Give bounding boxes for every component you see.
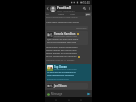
button[interactable]: Media (58, 13, 65, 16)
button[interactable]: Back (54, 98, 58, 102)
staticText: componenta subscriptio (54, 68, 77, 71)
staticText: sint et molestiae non recusan (46, 55, 77, 58)
button[interactable]: Attach (46, 92, 50, 96)
button[interactable]: Top Ocean (46, 64, 91, 81)
button[interactable]: Join (85, 13, 91, 16)
staticText: Quis autem vel eum iure repre (47, 38, 79, 41)
staticText: Sed ut perspiciatis unde omnis (46, 16, 78, 19)
staticText: consectetur adipisci velit (54, 35, 78, 38)
staticText: et harum quidem rerum (54, 87, 77, 88)
staticText: Media (58, 13, 65, 16)
button[interactable]: subscriptio (46, 26, 88, 30)
staticText: officiis debitis aut rerum nece (46, 49, 77, 52)
button[interactable]: More options (87, 6, 92, 11)
staticText: odio dignissimos ducimus (47, 74, 74, 77)
staticText: Topic: Illuminated curricula (57, 10, 82, 12)
button[interactable]: Search (82, 6, 87, 11)
staticText: Top Ocean (54, 65, 67, 68)
staticText: Joel Nixon (54, 84, 67, 87)
staticText: Message (51, 92, 86, 96)
staticText: All (46, 13, 49, 16)
staticText: At vero eos et accusamus et (47, 71, 76, 74)
staticText: Temporibus autem quibusdam (46, 46, 78, 49)
staticText: qui in ea voluptate velit esse (47, 41, 77, 44)
staticText: blanditiis praesentium (47, 78, 69, 80)
button[interactable]: Joel Nixon (46, 83, 88, 89)
staticText: Nam libero tempore cum soluta (46, 21, 79, 24)
button[interactable]: Send (86, 91, 91, 96)
button[interactable]: Links (70, 13, 76, 16)
button[interactable]: Home (67, 98, 71, 102)
button[interactable]: Pamela Hamilton (46, 31, 88, 45)
staticText: Pamela Hamilton (54, 32, 76, 35)
staticText: saepe eveniet ut et voluptates (46, 52, 77, 55)
button[interactable]: Back (45, 6, 50, 11)
staticText: 10:30 (83, 1, 90, 5)
staticText: Message 2022-04-11 football (46, 59, 75, 62)
staticText: Join (86, 13, 90, 16)
staticText: Football (57, 5, 71, 10)
staticText: Links (70, 13, 76, 16)
button[interactable]: All (46, 13, 49, 16)
staticText: subscriptio (76, 27, 87, 30)
button[interactable]: Recents (79, 98, 83, 102)
